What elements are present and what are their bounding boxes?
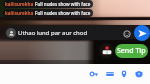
button[interactable]: kaliisurekha bbox=[3, 9, 93, 17]
button[interactable]: Send Tip bbox=[115, 44, 148, 58]
button[interactable]: Send gift bbox=[99, 43, 114, 58]
staticText: kaliisurekha bbox=[5, 10, 34, 16]
button[interactable]: Addresses bbox=[119, 69, 128, 78]
button[interactable]: Payment methods bbox=[105, 69, 114, 78]
button[interactable]: Send bbox=[134, 25, 150, 41]
staticText: Send Tip bbox=[117, 46, 146, 56]
button[interactable]: Privacy bbox=[134, 69, 143, 78]
staticText: Uthao lund par aur chod bbox=[18, 29, 88, 37]
button[interactable]: Uthao lund par aur chod bbox=[4, 26, 133, 40]
button[interactable]: Emoji bbox=[122, 29, 131, 38]
staticText: Full nudes show with face bbox=[35, 1, 91, 7]
staticText: kaliisurekha bbox=[5, 1, 34, 7]
button[interactable]: Passwords bbox=[89, 69, 98, 78]
button[interactable]: kaliisurekha bbox=[3, 0, 93, 8]
staticText: Full nudes show with face bbox=[35, 10, 91, 16]
